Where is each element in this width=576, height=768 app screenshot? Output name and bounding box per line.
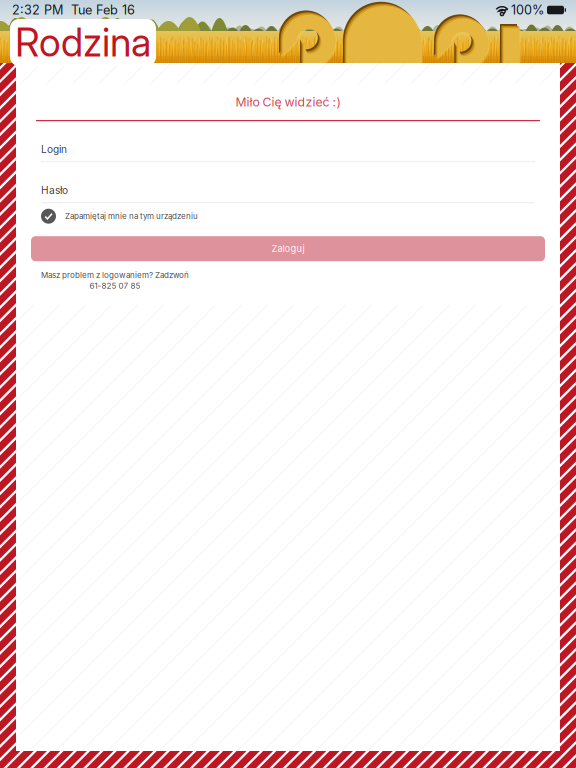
staticText: Zapamiętaj mnie na tym urządzeniu xyxy=(65,211,198,221)
staticText: Masz problem z logowaniem? Zadzwoń xyxy=(41,270,189,280)
staticText: Rodzina xyxy=(15,19,151,66)
button[interactable]: Zaloguj xyxy=(31,236,545,261)
staticText: Hasło xyxy=(41,184,68,196)
staticText: 100% xyxy=(511,2,544,18)
staticText: Login xyxy=(41,143,67,155)
staticText: 61-825 07 85 xyxy=(89,281,140,291)
staticText: 2:32 PM Tue Feb 16 xyxy=(12,2,135,18)
staticText: Zaloguj xyxy=(271,243,304,254)
staticText: Miło Cię widzieć :) xyxy=(235,95,340,109)
